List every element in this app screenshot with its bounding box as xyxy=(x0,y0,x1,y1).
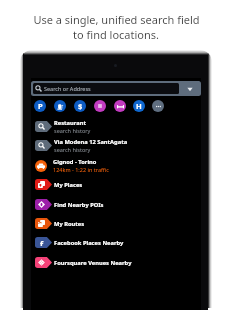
staticText: $ xyxy=(78,101,83,111)
button[interactable]: Hotel xyxy=(114,100,126,112)
button[interactable]: My Places xyxy=(35,175,201,194)
button[interactable]: f xyxy=(35,233,201,252)
staticText: Find Nearby POIs xyxy=(54,201,104,209)
staticText: Gignod - Torino xyxy=(53,158,97,166)
button[interactable]: Foursquare Venues Nearby xyxy=(35,253,201,272)
button[interactable]: Fuel xyxy=(54,100,66,112)
staticText: H xyxy=(136,101,142,111)
staticText: 124km - 1:22 in traffic xyxy=(53,166,109,173)
staticText: Facebook Places Nearby xyxy=(54,239,124,247)
staticText: to find locations. xyxy=(73,27,159,42)
button[interactable]: Expand search options xyxy=(179,81,201,96)
button[interactable]: My Routes xyxy=(35,214,201,233)
staticText: P xyxy=(38,101,43,111)
staticText: Restaurant xyxy=(54,119,86,127)
button[interactable]: Restaurant xyxy=(35,117,201,136)
staticText: My Places xyxy=(54,181,83,189)
button[interactable]: Parking xyxy=(34,100,46,112)
button[interactable]: Via Modena 12 SantAgata xyxy=(35,136,201,155)
button[interactable]: Search or Address xyxy=(31,81,201,96)
staticText: Foursquare Venues Nearby xyxy=(54,259,132,267)
staticText: Search or Address xyxy=(44,85,91,92)
button[interactable]: Find Nearby POIs xyxy=(35,195,201,214)
staticText: search history xyxy=(54,146,91,153)
staticText: search history xyxy=(54,127,91,134)
button[interactable]: Rest stop xyxy=(94,100,106,112)
button[interactable]: Hospital xyxy=(133,100,145,112)
staticText: My Routes xyxy=(54,220,85,228)
staticText: Via Modena 12 SantAgata xyxy=(54,138,128,146)
staticText: f xyxy=(40,239,44,246)
staticText: Use a single, unified search field xyxy=(33,12,200,27)
button[interactable]: Gignod - Torino xyxy=(35,156,201,175)
button[interactable]: ATM xyxy=(74,100,86,112)
button[interactable]: More categories xyxy=(152,100,164,112)
